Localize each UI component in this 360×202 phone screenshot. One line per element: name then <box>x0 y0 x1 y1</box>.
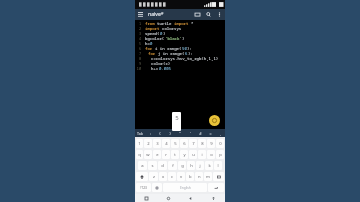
button[interactable]: = <box>205 129 215 137</box>
staticText: p <box>219 152 222 158</box>
button[interactable]: Recents <box>135 194 157 202</box>
button[interactable]: Menu <box>135 9 146 20</box>
button[interactable]: Shift <box>136 172 148 181</box>
button[interactable]: More options <box>214 9 225 20</box>
button[interactable]: 4 <box>162 139 170 148</box>
button[interactable]: e <box>153 150 161 159</box>
staticText: ): <box>187 46 192 51</box>
staticText: 8 <box>135 56 141 61</box>
staticText: " <box>179 131 181 136</box>
button[interactable]: q <box>136 150 143 159</box>
button[interactable]: Space <box>163 183 207 192</box>
button[interactable]: j <box>196 161 204 170</box>
staticText: naive* <box>148 11 164 18</box>
button[interactable]: Enter <box>208 183 224 192</box>
staticText: for <box>148 51 158 56</box>
button[interactable]: 5 <box>171 139 179 148</box>
button[interactable]: k <box>205 161 213 170</box>
button[interactable]: i <box>198 150 206 159</box>
button[interactable]: # <box>195 129 205 137</box>
button[interactable]: f <box>168 161 177 170</box>
button[interactable]: t <box>171 150 179 159</box>
staticText: 0 <box>150 41 153 46</box>
button[interactable]: l <box>214 161 222 170</box>
button[interactable]: w <box>144 150 152 159</box>
button[interactable]: z <box>149 172 158 181</box>
staticText: color(c) <box>151 61 171 66</box>
button[interactable]: y <box>180 150 188 159</box>
button[interactable]: Home <box>157 194 179 202</box>
button[interactable]: Back <box>179 194 202 202</box>
button[interactable]: v <box>177 172 185 181</box>
staticText: 0 <box>160 31 163 36</box>
staticText: o <box>210 152 213 158</box>
button[interactable]: ' <box>185 129 195 137</box>
staticText: ): <box>188 51 193 56</box>
button[interactable]: 1 <box>136 139 143 148</box>
button[interactable]: 9 <box>207 139 215 148</box>
button[interactable]: 7 <box>189 139 197 148</box>
staticText: range( <box>167 46 182 51</box>
button[interactable]: " <box>175 129 185 137</box>
staticText: 50 <box>182 46 187 51</box>
staticText: 7 <box>135 51 141 56</box>
button[interactable]: 6 <box>180 139 188 148</box>
staticText: # <box>199 131 202 136</box>
staticText: speed( <box>145 31 160 36</box>
button[interactable]: o <box>207 150 215 159</box>
staticText: 7 <box>192 141 195 147</box>
button[interactable]: Emoji <box>152 183 162 192</box>
button[interactable]: 8 <box>198 139 206 148</box>
staticText: = <box>209 131 212 136</box>
staticText: ' <box>190 131 191 136</box>
button[interactable]: m <box>204 172 212 181</box>
button[interactable]: n <box>195 172 203 181</box>
button[interactable]: 3 <box>153 139 161 148</box>
button[interactable]: g <box>178 161 186 170</box>
staticText: ( <box>159 131 161 136</box>
staticText: ?123 <box>140 186 147 190</box>
staticText: e <box>156 152 159 158</box>
staticText: bgcolor( <box>145 36 165 41</box>
button[interactable]: p <box>216 150 224 159</box>
button[interactable]: 2 <box>144 139 152 148</box>
staticText: d <box>161 163 164 169</box>
staticText: from <box>145 21 157 26</box>
button[interactable]: ) <box>165 129 175 137</box>
button[interactable]: c <box>168 172 176 181</box>
button[interactable]: Tab <box>135 129 145 137</box>
staticText: 4 <box>135 36 141 41</box>
staticText: 6 <box>183 141 186 147</box>
button[interactable]: d <box>158 161 167 170</box>
button[interactable]: Run <box>209 115 220 126</box>
staticText: n <box>198 174 201 180</box>
staticText: y <box>183 152 186 158</box>
staticText: b <box>189 174 192 180</box>
staticText: 3 <box>135 31 141 36</box>
button[interactable]: r <box>162 150 170 159</box>
button[interactable]: ( <box>155 129 165 137</box>
staticText: 5 <box>175 114 179 122</box>
staticText: v <box>180 174 183 180</box>
button[interactable]: 0 <box>216 139 224 148</box>
button[interactable]: x <box>159 172 167 181</box>
button[interactable]: h <box>187 161 195 170</box>
button[interactable]: b <box>186 172 194 181</box>
button[interactable]: ?123 <box>136 183 151 192</box>
button[interactable]: Open folder <box>192 9 203 20</box>
staticText: turtle <box>157 21 174 26</box>
staticText: 0 <box>219 141 222 147</box>
button[interactable]: , <box>215 129 225 137</box>
staticText: h= <box>145 41 150 46</box>
staticText: i in <box>155 46 167 51</box>
button[interactable]: a <box>138 161 147 170</box>
button[interactable]: : <box>145 129 155 137</box>
button[interactable]: 1 <box>135 20 225 129</box>
button[interactable]: u <box>189 150 197 159</box>
button[interactable]: s <box>148 161 157 170</box>
button[interactable]: Keyboard <box>202 194 225 202</box>
button[interactable]: Backspace <box>213 172 224 181</box>
button[interactable]: Search <box>203 9 214 20</box>
staticText: l <box>217 163 219 169</box>
staticText: k <box>208 163 211 169</box>
